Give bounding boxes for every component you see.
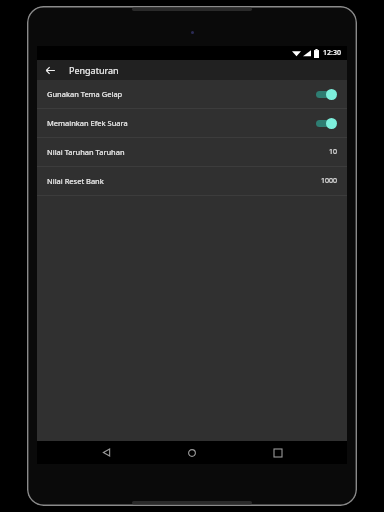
button[interactable]: Gunakan Tema Gelap <box>37 80 347 108</box>
staticText: Pengaturan <box>69 64 119 76</box>
button[interactable]: Recent apps <box>261 441 295 464</box>
button[interactable]: Memainkan Efek Suara <box>37 109 347 137</box>
button[interactable]: Back <box>89 441 123 464</box>
button[interactable]: Nilai Reset Bank <box>37 167 347 195</box>
staticText: Nilai Taruhan Taruhan <box>47 147 328 157</box>
staticText: Nilai Reset Bank <box>47 176 320 186</box>
staticText: Gunakan Tema Gelap <box>47 89 315 99</box>
button[interactable]: Nilai Taruhan Taruhan <box>37 138 347 166</box>
button[interactable]: Home <box>175 441 209 464</box>
staticText: 12:30 <box>323 48 341 58</box>
staticText: Memainkan Efek Suara <box>47 118 315 128</box>
other: Memainkan Efek Suara <box>315 117 337 129</box>
button[interactable]: Back <box>37 60 63 80</box>
staticText: 1000 <box>320 176 337 186</box>
staticText: 10 <box>328 147 337 157</box>
other: Gunakan Tema Gelap <box>315 88 337 100</box>
